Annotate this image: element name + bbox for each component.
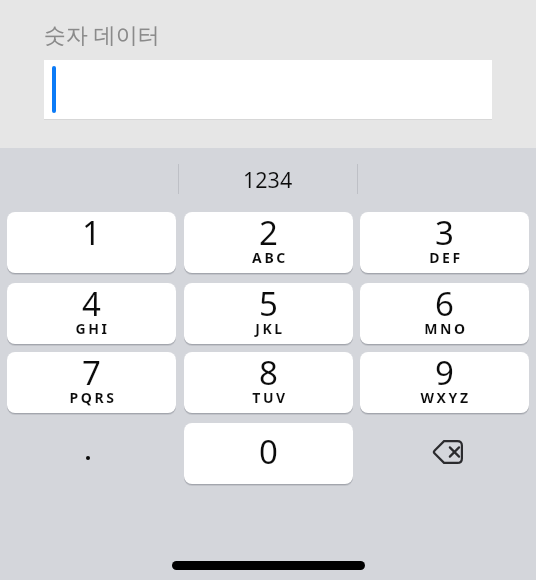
staticText: WXYZ xyxy=(420,388,471,407)
button[interactable]: 3 DEF xyxy=(360,212,529,273)
button[interactable]: 1234 xyxy=(179,148,357,211)
button[interactable]: 4 GHI xyxy=(7,283,176,344)
staticText: 1234 xyxy=(243,165,293,194)
staticText: 8 xyxy=(259,350,278,395)
staticText: 9 xyxy=(435,350,454,395)
staticText: TUV xyxy=(252,388,288,407)
staticText: GHI xyxy=(75,319,110,338)
button[interactable]: 5 JKL xyxy=(184,283,353,344)
staticText: 4 xyxy=(82,281,101,326)
button[interactable]: 9 WXYZ xyxy=(360,352,529,413)
button[interactable]: 1 xyxy=(7,212,176,273)
button[interactable]: 7 PQRS xyxy=(7,352,176,413)
staticText: 숫자 데이터 xyxy=(44,19,160,49)
button[interactable]: 8 TUV xyxy=(184,352,353,413)
staticText: 7 xyxy=(82,350,101,395)
button[interactable]: 0 xyxy=(184,423,353,484)
staticText: PQRS xyxy=(69,388,117,407)
button[interactable]: 2 ABC xyxy=(184,212,353,273)
staticText: 2 xyxy=(259,210,278,255)
button[interactable]: 6 MNO xyxy=(360,283,529,344)
staticText: 6 xyxy=(435,281,454,326)
button[interactable]: Numeric text field xyxy=(44,60,492,119)
staticText: DEF xyxy=(429,248,463,267)
staticText: 5 xyxy=(259,281,278,326)
staticText: ABC xyxy=(252,248,288,267)
staticText: 3 xyxy=(435,210,454,255)
staticText: JKL xyxy=(255,319,285,338)
staticText: 0 xyxy=(259,429,278,474)
button[interactable]: Delete xyxy=(360,423,529,484)
staticText: 1 xyxy=(82,210,101,255)
button[interactable]: Decimal point xyxy=(7,423,176,484)
staticText: MNO xyxy=(424,319,468,338)
